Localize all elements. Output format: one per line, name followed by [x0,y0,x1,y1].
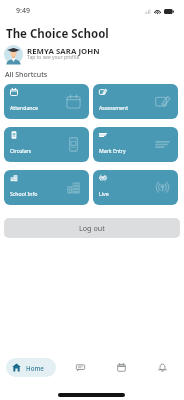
button[interactable]: Home [6,358,56,377]
staticText: Attendance [10,104,38,111]
staticText: The Choice School [6,26,109,42]
staticText: Live [99,190,109,197]
button[interactable]: Notifications [151,358,173,376]
button[interactable]: Calendar [110,358,132,376]
button[interactable]: Log out [4,218,180,238]
button[interactable]: Live [93,170,178,205]
button[interactable]: Chat [69,358,91,376]
staticText: School Info [10,190,38,197]
staticText: Home [26,364,44,372]
button[interactable]: REMYA SARA JOHN [0,45,184,64]
button[interactable]: Mark Entry [93,127,178,162]
staticText: Mark Entry [99,147,126,154]
button[interactable]: School Info [4,170,89,205]
staticText: 9:49 [16,6,30,16]
button[interactable]: Circulars [4,127,89,162]
button[interactable]: Assessment [93,84,178,119]
staticText: Circulars [10,147,32,154]
button[interactable]: Attendance [4,84,89,119]
staticText: All Shortcuts [5,70,48,80]
staticText: REMYA SARA JOHN [27,46,100,57]
staticText: Tap to see your profile [27,54,80,61]
staticText: Assessment [99,104,129,111]
staticText: Log out [79,223,105,233]
